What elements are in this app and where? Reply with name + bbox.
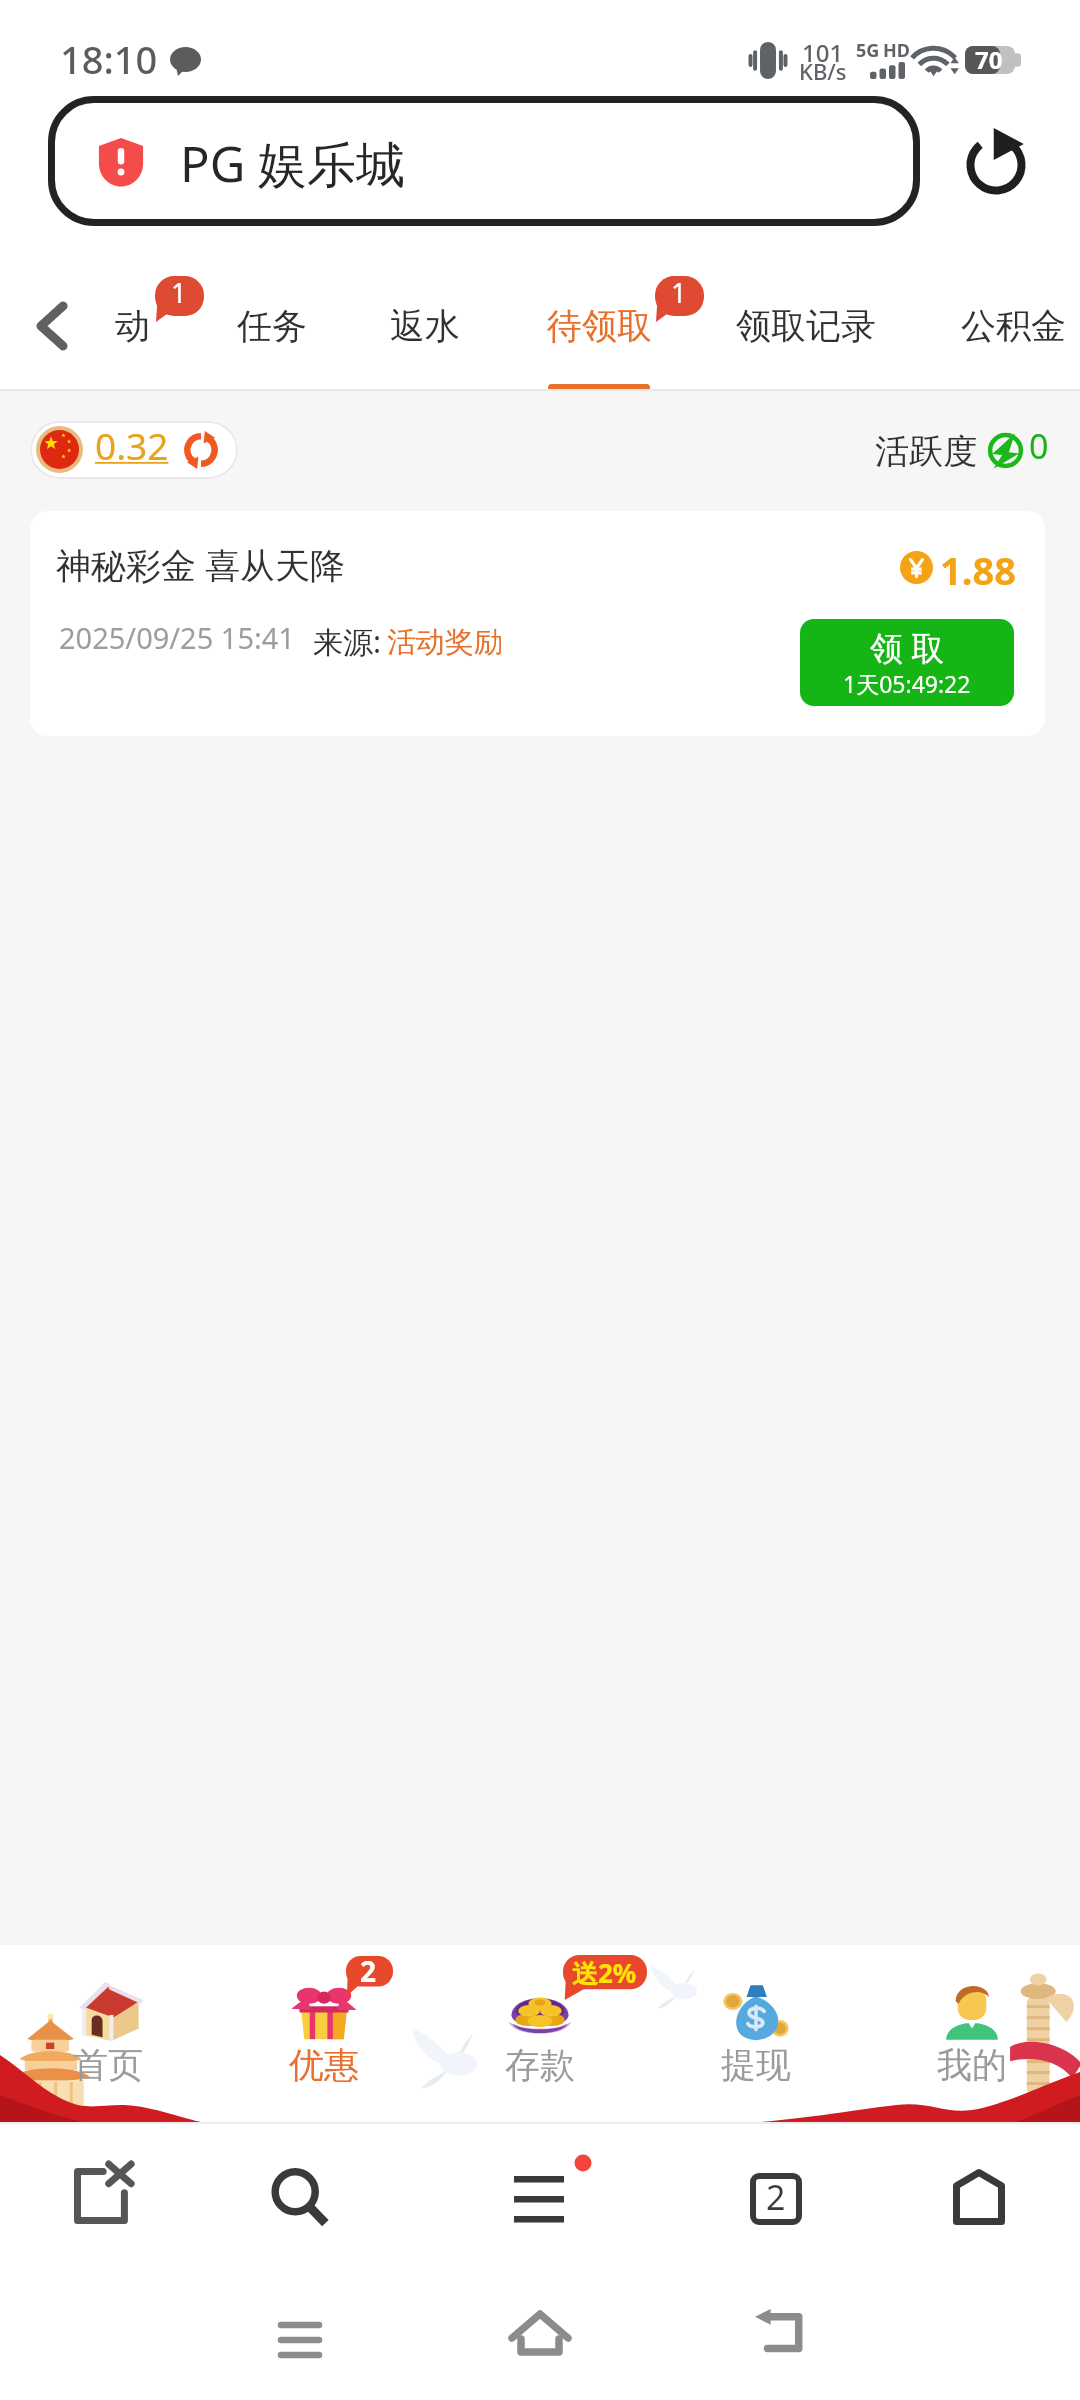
staticText: 5G xyxy=(856,38,880,63)
staticText: 1天05:49:22 xyxy=(843,668,971,699)
staticText: 1 xyxy=(671,274,687,311)
staticText: 待领取 xyxy=(547,304,652,348)
staticText: 2 xyxy=(766,2174,786,2220)
staticText: 1 xyxy=(171,274,187,311)
staticText: 提现 xyxy=(721,2043,791,2087)
staticText: 优惠 xyxy=(289,2043,359,2087)
staticText: 18:10 xyxy=(60,33,158,85)
staticText: HD xyxy=(883,38,910,63)
staticText: 70 xyxy=(975,43,1003,76)
button[interactable]: Search xyxy=(220,2124,380,2290)
staticText: 返水 xyxy=(390,304,460,348)
button[interactable] xyxy=(432,1945,648,2124)
button[interactable] xyxy=(48,96,920,226)
button[interactable] xyxy=(864,1945,1080,2124)
staticText: 0.32 xyxy=(95,421,169,470)
staticText: 101 xyxy=(802,36,844,69)
button[interactable] xyxy=(216,1945,432,2124)
button[interactable]: Home xyxy=(470,2290,610,2400)
button[interactable] xyxy=(99,260,169,391)
staticText: 领 取 xyxy=(870,625,945,670)
button[interactable] xyxy=(531,260,669,391)
staticText: 任务 xyxy=(237,304,307,348)
staticText: 存款 xyxy=(505,2043,575,2087)
staticText: 神秘彩金 喜从天降 xyxy=(56,541,346,589)
staticText: 送2% xyxy=(572,1955,637,1991)
button[interactable] xyxy=(374,260,478,391)
staticText: 领取记录 xyxy=(736,304,876,348)
button[interactable] xyxy=(0,1945,216,2124)
staticText: KB/s xyxy=(799,56,847,86)
button[interactable] xyxy=(720,260,892,391)
staticText: 动 xyxy=(115,304,150,348)
button[interactable]: Home xyxy=(898,2124,1058,2290)
button[interactable]: Recents xyxy=(230,2290,370,2400)
button[interactable] xyxy=(945,260,1080,391)
staticText: 首页 xyxy=(73,2043,143,2087)
button[interactable]: 0.32 xyxy=(30,421,238,479)
button[interactable]: Back xyxy=(12,286,92,366)
staticText: 2025/09/25 15:41 xyxy=(59,618,295,657)
button[interactable]: Refresh xyxy=(950,115,1042,207)
staticText: 我的 xyxy=(937,2043,1007,2087)
staticText: 活跃度 xyxy=(875,430,977,473)
button[interactable] xyxy=(648,1945,864,2124)
staticText: 2 xyxy=(360,1952,377,1990)
staticText: 公积金 xyxy=(961,304,1066,348)
button[interactable]: 领 取 xyxy=(800,619,1014,706)
button[interactable]: Tabs xyxy=(698,2124,858,2290)
staticText: 活动奖励 xyxy=(387,624,503,661)
button[interactable]: Close tab xyxy=(22,2124,182,2290)
button[interactable]: Back xyxy=(710,2290,850,2400)
button[interactable]: Menu xyxy=(460,2124,620,2290)
staticText: 1.88 xyxy=(940,544,1016,596)
staticText: PG 娱乐城 xyxy=(180,130,406,197)
staticText: 来源: xyxy=(313,621,382,662)
button[interactable] xyxy=(221,260,325,391)
staticText: 0 xyxy=(1029,423,1049,469)
